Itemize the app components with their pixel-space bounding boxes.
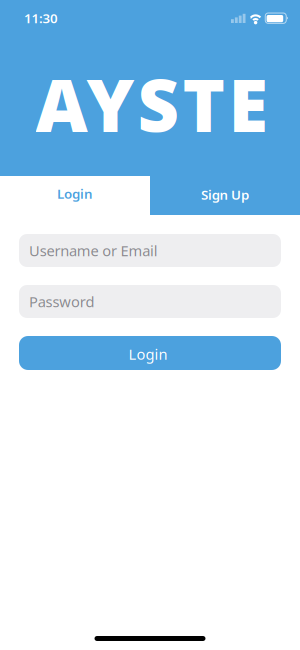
button[interactable]: Username or Email <box>19 234 281 267</box>
staticText: Password <box>29 292 95 311</box>
button[interactable]: Login <box>19 336 281 370</box>
staticText: AYSTE <box>35 56 268 152</box>
staticText: Sign Up <box>201 186 249 203</box>
button[interactable]: Login <box>0 176 150 215</box>
staticText: Login <box>128 344 167 364</box>
staticText: 11:30 <box>24 9 58 27</box>
staticText: Login <box>57 185 93 202</box>
button[interactable]: Sign Up <box>150 176 300 215</box>
button[interactable]: Password <box>19 285 281 318</box>
staticText: Username or Email <box>29 241 158 260</box>
